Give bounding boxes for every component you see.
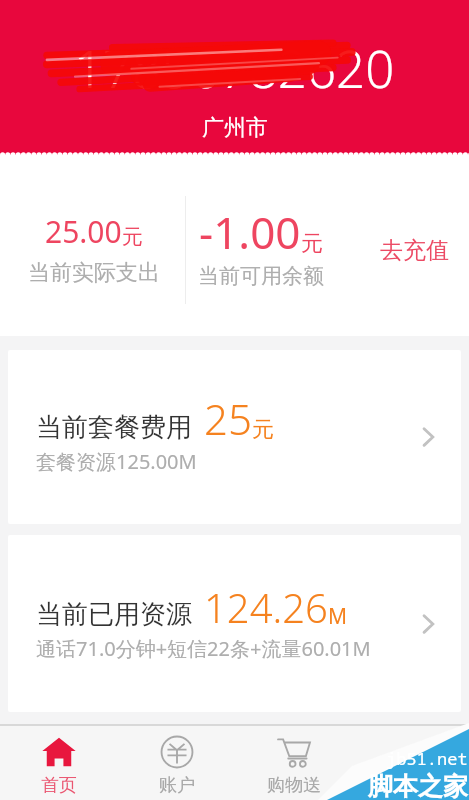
staticText: 17856782620 xyxy=(74,33,395,89)
staticText: 账户 xyxy=(159,774,195,797)
staticText: 25 xyxy=(204,390,252,447)
button[interactable]: 当前已用资源 xyxy=(8,535,461,712)
button[interactable]: Account xyxy=(118,726,235,800)
staticText: 通话71.0分钟+短信22条+流量60.01M xyxy=(36,635,371,662)
other: Shop xyxy=(277,735,311,769)
staticText: 当前实际支出 xyxy=(28,259,160,287)
staticText: 25.00 xyxy=(45,211,122,252)
button[interactable]: Home xyxy=(0,726,118,800)
staticText: 当前已用资源 xyxy=(36,598,192,631)
staticText: -1.00 xyxy=(199,202,301,262)
staticText: 购物送 xyxy=(267,774,321,797)
staticText: 当前套餐费用 xyxy=(36,411,192,444)
button[interactable] xyxy=(352,726,469,800)
button[interactable]: 去充值 xyxy=(360,218,469,282)
other: Home xyxy=(42,735,76,769)
staticText: 元 xyxy=(122,224,143,250)
staticText: 元 xyxy=(301,230,323,258)
other: Account xyxy=(160,735,194,769)
staticText: 当前可用余额 xyxy=(198,263,324,289)
staticText: 套餐资源125.00M xyxy=(36,448,197,475)
staticText: jb51.net xyxy=(386,747,468,770)
staticText: 广州市 xyxy=(202,114,268,142)
staticText: 脚本之家 xyxy=(368,771,468,800)
staticText: M xyxy=(328,602,348,631)
staticText: 去充值 xyxy=(380,236,449,265)
button[interactable]: 当前套餐费用 xyxy=(8,350,461,524)
staticText: 元 xyxy=(252,416,274,444)
button[interactable]: Shop xyxy=(235,726,352,800)
staticText: 124.26 xyxy=(204,580,328,634)
staticText: 首页 xyxy=(41,774,77,797)
